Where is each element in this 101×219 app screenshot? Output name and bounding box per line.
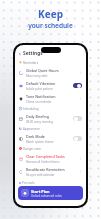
staticText: Chime on reminder bbox=[26, 100, 52, 104]
button[interactable]: Back bbox=[17, 51, 22, 56]
button[interactable]: Dark Mode bbox=[15, 132, 86, 145]
button[interactable]: Default Vibration bbox=[15, 79, 86, 92]
staticText: Recalibrate Reminders bbox=[26, 167, 65, 172]
staticText: Pro tools bbox=[22, 181, 35, 185]
staticText: 08:00 every morning bbox=[26, 120, 54, 124]
staticText: Default Vibration bbox=[26, 81, 56, 86]
staticText: your schedule bbox=[28, 21, 73, 30]
staticText: Daily Briefing bbox=[26, 114, 50, 119]
staticText: Scheduling bbox=[23, 107, 39, 111]
staticText: Mute every alert bbox=[26, 74, 48, 78]
staticText: Global Quiet Hours bbox=[26, 68, 59, 73]
button[interactable]: Start Plan bbox=[18, 186, 83, 200]
button[interactable]: Daily Briefing bbox=[15, 112, 86, 125]
button[interactable]: Clear Completed Tasks bbox=[15, 152, 86, 165]
staticText: Remove all finished items bbox=[26, 160, 60, 164]
button[interactable]: Tone Notification bbox=[15, 92, 86, 105]
staticText: Keep bbox=[38, 7, 63, 21]
staticText: Re-sync with calendar bbox=[26, 173, 55, 177]
staticText: Reminders bbox=[23, 61, 39, 65]
button[interactable]: Global Quiet Hours bbox=[15, 66, 86, 79]
staticText: Clear Completed Tasks bbox=[26, 154, 65, 159]
staticText: Danger zone bbox=[23, 147, 42, 151]
button[interactable]: Toggle bbox=[73, 136, 82, 141]
button[interactable]: Recalibrate Reminders bbox=[15, 165, 86, 178]
staticText: Match system theme bbox=[26, 140, 54, 144]
staticText: Tone Notification bbox=[26, 94, 56, 99]
staticText: Dark Mode bbox=[26, 134, 45, 139]
staticText: Settings bbox=[23, 50, 43, 56]
staticText: Subtle pulse pattern bbox=[26, 87, 53, 91]
staticText: Appearance bbox=[23, 127, 40, 131]
button[interactable]: Toggle bbox=[73, 83, 82, 88]
staticText: Start Plan bbox=[31, 189, 50, 194]
button[interactable]: Toggle bbox=[73, 116, 82, 121]
staticText: Unlock advanced rules bbox=[31, 194, 62, 198]
